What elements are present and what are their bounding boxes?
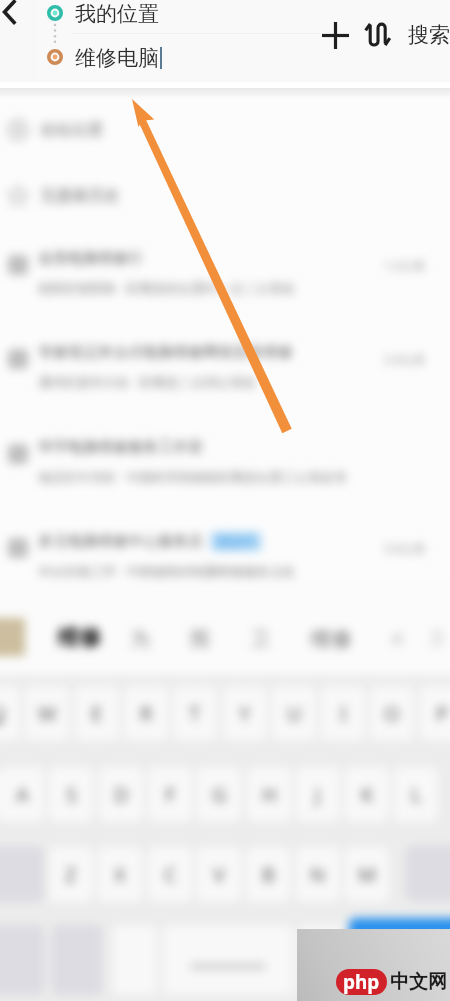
button[interactable]: Z: [49, 847, 93, 902]
button[interactable]: Swap start and destination: [360, 16, 396, 52]
staticText: 专修笔记本台式电脑维修网络安装维修: [38, 343, 293, 362]
staticText: R: [140, 700, 153, 727]
staticText: 围: [190, 627, 210, 652]
staticText: 5.6公里: [384, 540, 425, 556]
button[interactable]: A: [0, 767, 44, 822]
button[interactable]: G: [197, 767, 241, 822]
button[interactable]: Y: [223, 686, 267, 741]
staticText: 多元电脑维修中心服务店: [38, 532, 203, 551]
staticText: N: [310, 861, 326, 888]
staticText: 维修: [57, 624, 101, 652]
staticText: 搜索: [408, 22, 450, 48]
staticText: D: [114, 781, 129, 808]
staticText: C: [164, 861, 177, 888]
button[interactable]: W: [25, 686, 69, 741]
button[interactable]: V: [197, 847, 241, 902]
staticText: 丰台区南三环 · 中路辅路的电脑维修服务点处: [38, 562, 296, 580]
button[interactable]: P: [420, 686, 450, 741]
staticText: H: [262, 781, 277, 808]
staticText: X: [114, 861, 126, 888]
staticText: F: [165, 781, 176, 808]
button[interactable]: N: [296, 847, 340, 902]
button[interactable]: U: [272, 686, 316, 741]
button[interactable]: 搜索: [408, 17, 450, 53]
button[interactable]: X: [98, 847, 142, 902]
staticText: I: [340, 700, 347, 727]
button[interactable]: 华宇电脑维修服务工作室: [0, 432, 450, 496]
button[interactable]: H: [247, 767, 291, 822]
button[interactable]: O: [370, 686, 414, 741]
staticText: E: [91, 700, 103, 727]
button[interactable]: Period: [299, 925, 343, 995]
staticText: L: [411, 781, 422, 808]
button[interactable]: 专修笔记本台式电脑维修网络安装维修: [0, 337, 450, 401]
button[interactable]: T: [173, 686, 217, 741]
button[interactable]: 多元电脑维修中心服务店: [0, 526, 450, 590]
button[interactable]: D: [99, 767, 143, 822]
staticText: S: [66, 781, 77, 808]
staticText: J: [315, 781, 321, 808]
button[interactable]: Back: [0, 0, 29, 32]
button[interactable]: R: [124, 686, 168, 741]
staticText: 卫: [250, 627, 270, 652]
button[interactable]: L: [394, 767, 438, 822]
button[interactable]: 在站位置: [0, 111, 450, 149]
button[interactable]: E: [75, 686, 119, 741]
staticText: U: [287, 700, 302, 727]
button[interactable]: 我的位置: [75, 1, 315, 26]
staticText: V: [213, 861, 225, 888]
button[interactable]: I: [321, 686, 365, 741]
staticText: G: [212, 781, 227, 808]
staticText: 在站位置: [40, 120, 104, 140]
staticText: 营业中: [218, 534, 254, 549]
button[interactable]: M: [345, 847, 389, 902]
button[interactable]: F: [148, 767, 192, 822]
staticText: A: [16, 781, 29, 808]
staticText: 中文网: [390, 970, 447, 994]
staticText: T: [189, 700, 201, 727]
staticText: 维修: [310, 626, 352, 652]
staticText: 海淀区中关村 · 中国科学院南路距离您位置三公里处等: [38, 468, 348, 486]
button[interactable]: 金燕电脑维修行: [0, 243, 450, 307]
button[interactable]: B: [246, 847, 290, 902]
button[interactable]: Space: [163, 925, 293, 995]
staticText: Y: [239, 700, 251, 727]
button[interactable]: J: [296, 767, 340, 822]
staticText: 为: [130, 627, 150, 652]
staticText: 1.2公里: [384, 257, 425, 273]
button[interactable]: 维修电脑: [75, 45, 315, 70]
button[interactable]: Enter: [349, 918, 450, 990]
staticText: Z: [65, 861, 77, 888]
staticText: W: [38, 700, 57, 727]
button[interactable]: Q: [0, 686, 20, 741]
staticText: 维修电脑: [75, 45, 159, 70]
staticText: 华宇电脑维修服务工作室: [38, 438, 203, 457]
staticText: O: [384, 700, 400, 727]
staticText: B: [262, 861, 275, 888]
staticText: P: [436, 700, 449, 727]
staticText: M: [358, 861, 377, 888]
staticText: 金燕电脑维修行: [38, 249, 143, 268]
staticText: 我的位置: [75, 1, 159, 26]
staticText: K: [361, 781, 374, 808]
button[interactable]: Add waypoint: [317, 17, 353, 53]
button[interactable]: K: [345, 767, 389, 822]
staticText: 朝阳区朝阳路 · 距离您的位置约一点二公里处: [38, 279, 296, 297]
staticText: 未: [390, 630, 405, 649]
button[interactable]: C: [148, 847, 192, 902]
button[interactable]: S: [49, 767, 93, 822]
staticText: 通州区新华大街 · 距离您二点四公里处: [38, 373, 257, 391]
staticText: php: [343, 969, 380, 995]
staticText: Q: [0, 700, 6, 727]
staticText: 无搜索历史: [40, 186, 120, 206]
button[interactable]: 无搜索历史: [0, 177, 450, 215]
staticText: 2.4公里: [384, 351, 425, 367]
